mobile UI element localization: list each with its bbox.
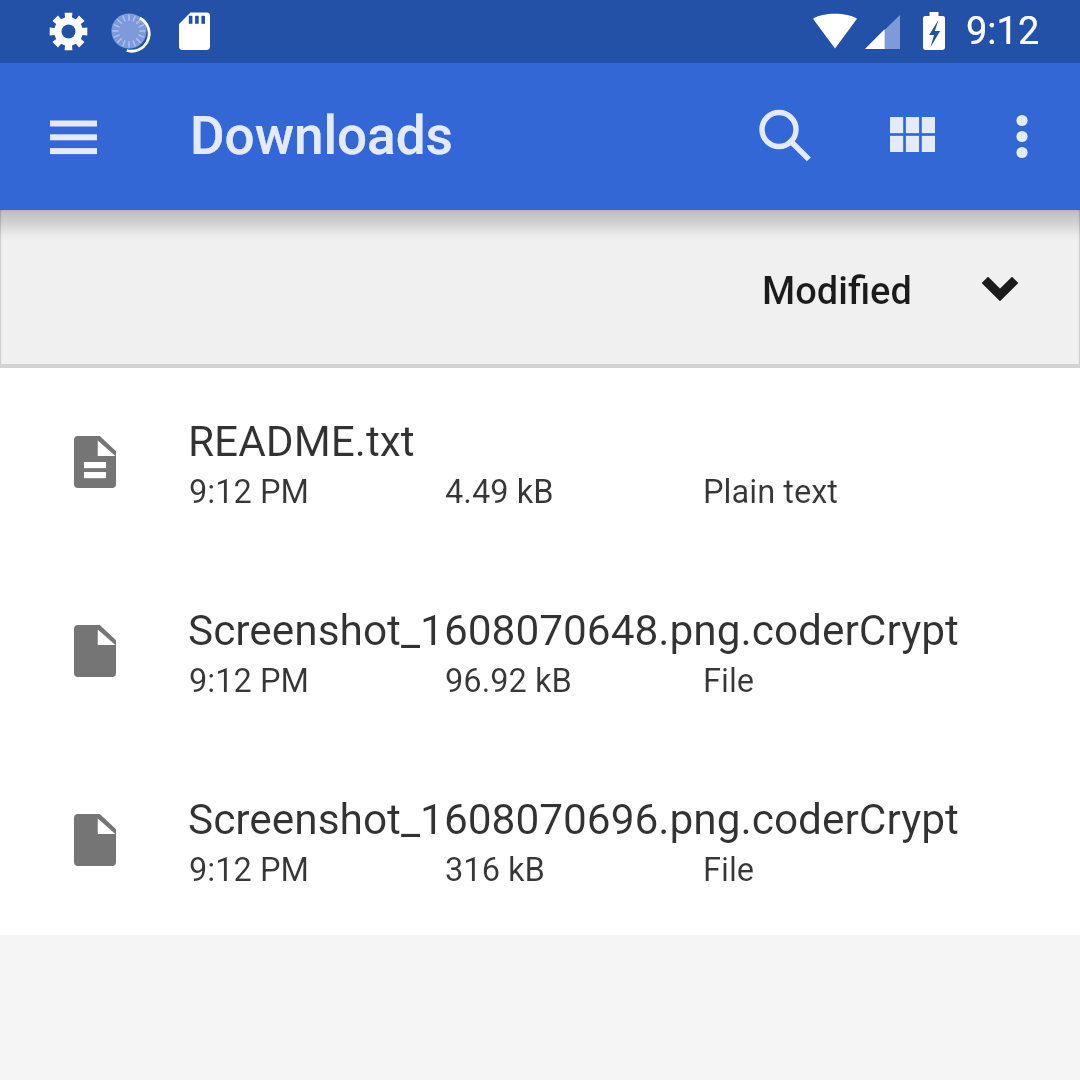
- staticText: 9:12 PM: [189, 473, 309, 511]
- staticText: 9:12: [966, 9, 1040, 54]
- staticText: 9:12 PM: [189, 851, 309, 889]
- staticText: 9:12 PM: [189, 662, 309, 700]
- staticText: Screenshot_1608070648.png.coderCrypt: [188, 606, 959, 656]
- button[interactable]: More options: [974, 89, 1070, 185]
- staticText: 96.92 kB: [445, 662, 572, 700]
- staticText: README.txt: [188, 417, 415, 467]
- staticText: Screenshot_1608070696.png.coderCrypt: [188, 795, 959, 845]
- staticText: 4.49 kB: [445, 473, 554, 511]
- staticText: File: [703, 851, 755, 889]
- button[interactable]: Open navigation drawer: [26, 89, 122, 185]
- staticText: Downloads: [190, 105, 453, 167]
- staticText: Modified: [762, 269, 912, 314]
- staticText: File: [703, 662, 755, 700]
- button[interactable]: Screenshot_1608070648.png.coderCrypt: [0, 557, 1080, 746]
- button[interactable]: Modified: [762, 265, 1017, 310]
- staticText: Plain text: [703, 473, 839, 511]
- button[interactable]: README.txt: [0, 368, 1080, 557]
- button[interactable]: Search: [734, 89, 830, 185]
- button[interactable]: Screenshot_1608070696.png.coderCrypt: [0, 746, 1080, 935]
- button[interactable]: Switch to grid view: [864, 89, 960, 185]
- staticText: 316 kB: [445, 851, 545, 889]
